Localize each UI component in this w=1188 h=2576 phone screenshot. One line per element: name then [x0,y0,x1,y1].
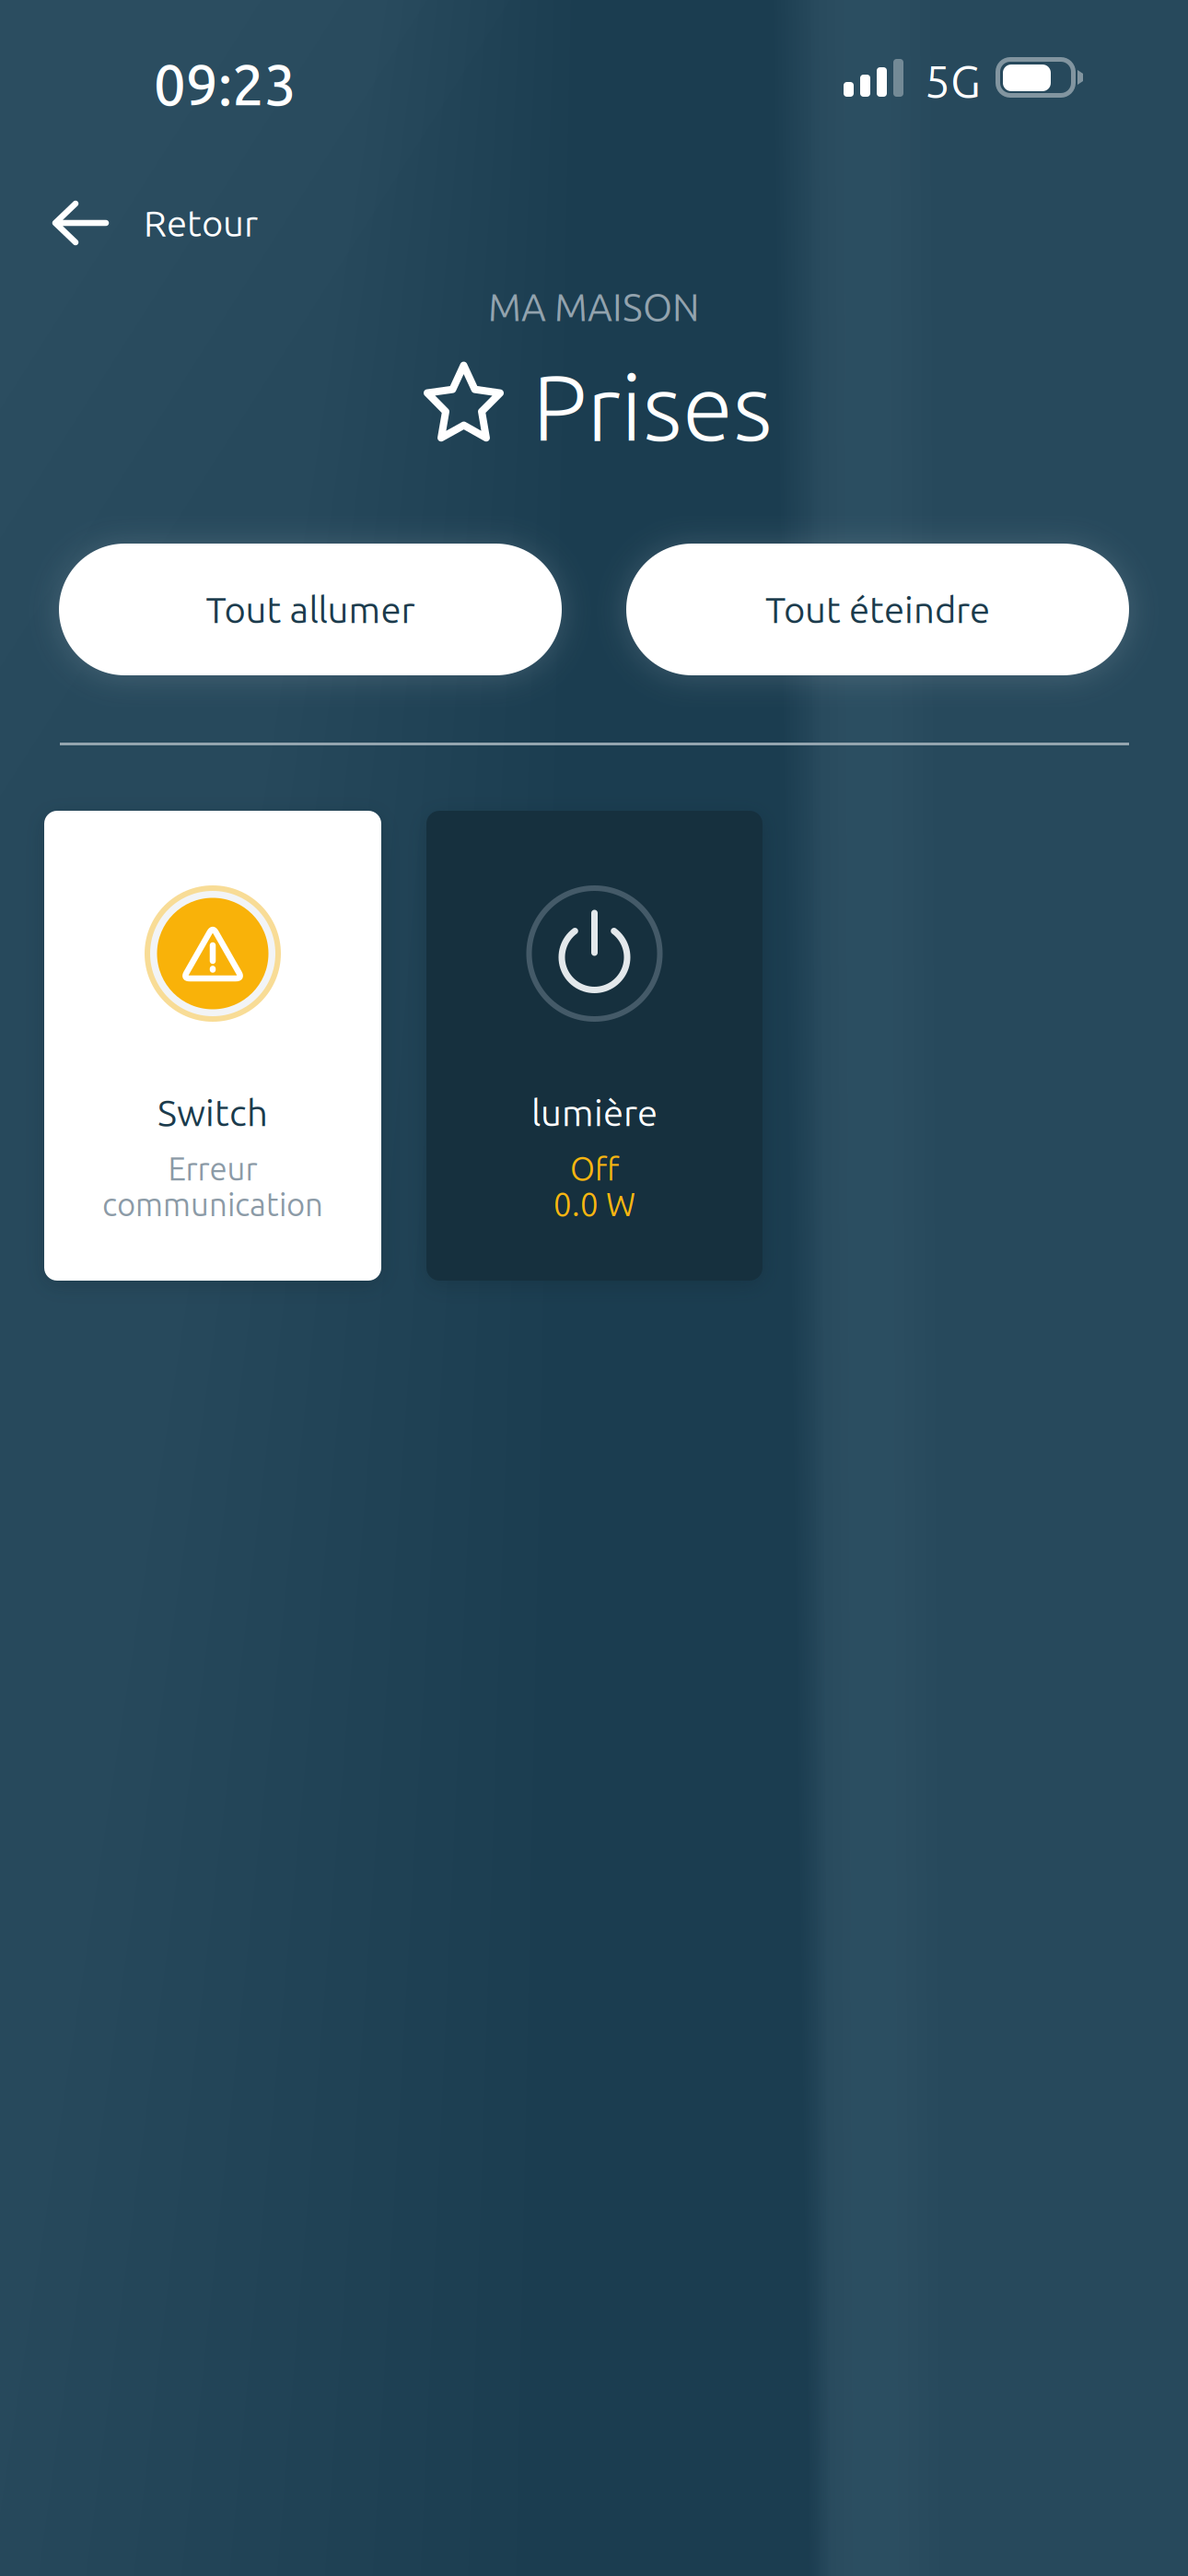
staticText: lumière [531,1092,658,1133]
button[interactable]: Tout éteindre [626,544,1129,675]
button[interactable]: Tout allumer [59,544,562,675]
staticText: 5G [925,55,981,106]
staticText: Retour [144,202,258,244]
staticText: Tout éteindre [765,589,990,630]
staticText: Off [570,1151,619,1186]
staticText: communication [102,1186,323,1222]
button[interactable]: Retour [0,179,460,267]
staticText: 09:23 [154,53,297,116]
staticText: Tout allumer [206,589,415,630]
staticText: Erreur [168,1151,257,1186]
button[interactable]: Switch [44,811,381,1281]
staticText: Prises [532,355,773,458]
staticText: Switch [157,1092,268,1133]
staticText: 0.0 W [553,1186,635,1222]
button[interactable]: lumière [426,811,763,1281]
staticText: MA MAISON [488,286,700,328]
